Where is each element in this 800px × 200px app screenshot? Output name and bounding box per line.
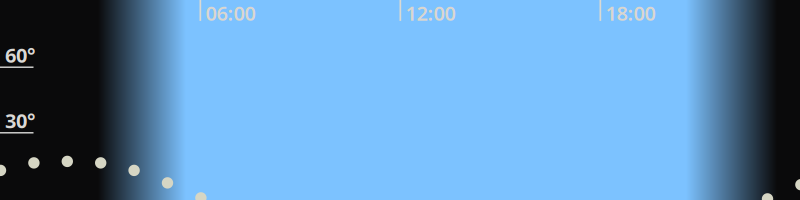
staticText: 06:00 <box>205 0 255 26</box>
staticText: 60° <box>5 42 35 68</box>
staticText: 18:00 <box>605 0 655 26</box>
staticText: 30° <box>5 107 35 134</box>
staticText: 12:00 <box>405 0 455 26</box>
button[interactable]: Hourly temperature graph <box>0 0 800 200</box>
